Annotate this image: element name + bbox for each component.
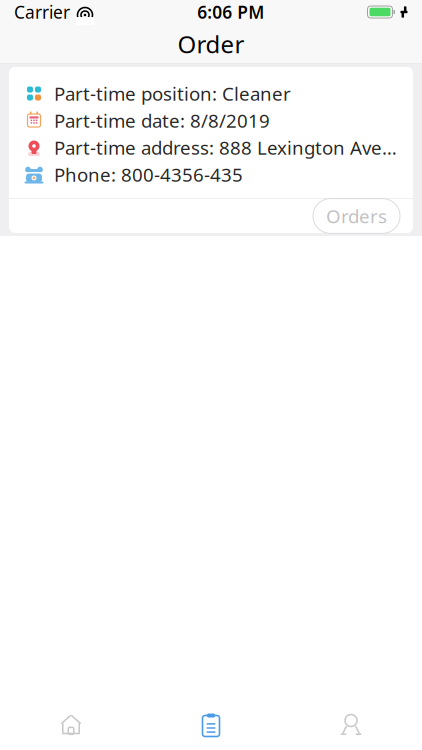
staticText: 6:06 PM [197, 0, 264, 23]
button[interactable]: Profile [281, 700, 421, 750]
button[interactable]: Orders [313, 199, 400, 233]
staticText: Order [177, 28, 244, 60]
button[interactable]: Orders [141, 700, 281, 750]
staticText: Phone: 800-4356-435 [54, 162, 243, 187]
button[interactable]: Home [1, 700, 141, 750]
staticText: Part-time date: 8/8/2019 [54, 108, 270, 133]
staticText: Part-time address: 888 Lexington Avenue,… [54, 135, 399, 160]
staticText: Part-time position: Cleaner [54, 81, 291, 106]
staticText: Carrier [14, 0, 70, 23]
staticText: Orders [326, 204, 387, 228]
